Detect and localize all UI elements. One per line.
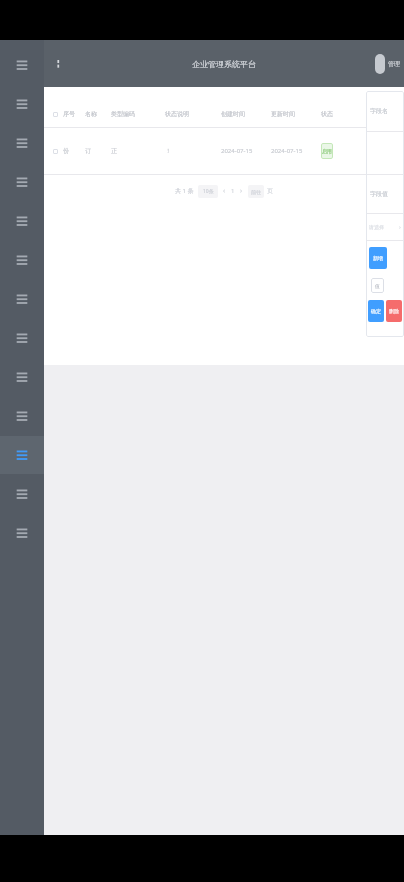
- button[interactable]: 份: [44, 128, 404, 174]
- button[interactable]: Settings: [0, 358, 44, 396]
- button[interactable]: 确定: [368, 300, 384, 322]
- staticText: 序号: [63, 110, 85, 118]
- button[interactable]: 10条: [198, 185, 218, 198]
- button[interactable]: 请选择: [366, 214, 404, 240]
- staticText: 2024-07-15: [221, 147, 271, 155]
- button[interactable]: Workflow: [0, 436, 44, 474]
- button[interactable]: Tasks: [0, 475, 44, 513]
- button[interactable]: Customers: [0, 202, 44, 240]
- staticText: 创建时间: [221, 110, 271, 118]
- staticText: 企业管理系统平台: [192, 59, 256, 69]
- button[interactable]: Logistics: [0, 319, 44, 357]
- button[interactable]: Products: [0, 124, 44, 162]
- staticText: 字段值: [370, 190, 388, 198]
- staticText: 类型编码: [111, 110, 165, 118]
- staticText: ›: [240, 186, 243, 196]
- button[interactable]: Orders: [0, 85, 44, 123]
- button[interactable]: 删除: [386, 300, 402, 322]
- staticText: 字段名: [370, 107, 388, 115]
- staticText: 2024-07-15: [271, 147, 321, 155]
- button[interactable]: 前往: [248, 185, 264, 198]
- staticText: 值: [375, 283, 380, 289]
- staticText: 订: [85, 147, 111, 155]
- button[interactable]: Dashboard: [0, 46, 44, 84]
- staticText: 10条: [203, 188, 214, 195]
- button[interactable]: Account: [375, 54, 400, 74]
- staticText: 共 1 条: [175, 187, 194, 195]
- staticText: 份: [63, 147, 85, 155]
- staticText: 请选择: [369, 224, 384, 230]
- button[interactable]: 值: [371, 278, 384, 293]
- staticText: 1: [231, 187, 235, 195]
- button[interactable]: System: [0, 514, 44, 552]
- button[interactable]: Menu: [46, 51, 72, 77]
- staticText: ‹: [223, 186, 226, 196]
- staticText: 管理: [388, 60, 400, 68]
- staticText: 状态: [321, 110, 345, 118]
- button[interactable]: Reports: [0, 241, 44, 279]
- staticText: 前往: [251, 189, 261, 195]
- staticText: 更新时间: [271, 110, 321, 118]
- button[interactable]: 新增: [369, 247, 387, 269]
- staticText: 页: [267, 187, 273, 195]
- staticText: 启用: [322, 148, 332, 154]
- button[interactable]: Users: [0, 397, 44, 435]
- button[interactable]: Finance: [0, 280, 44, 318]
- staticText: 状态说明: [165, 110, 221, 118]
- staticText: 新增: [373, 255, 383, 261]
- staticText: ！: [165, 147, 221, 155]
- staticText: 删除: [389, 308, 399, 314]
- button[interactable]: Inventory: [0, 163, 44, 201]
- staticText: 确定: [371, 308, 381, 314]
- staticText: 正: [111, 147, 165, 155]
- staticText: ›: [399, 223, 401, 231]
- staticText: 名称: [85, 110, 111, 118]
